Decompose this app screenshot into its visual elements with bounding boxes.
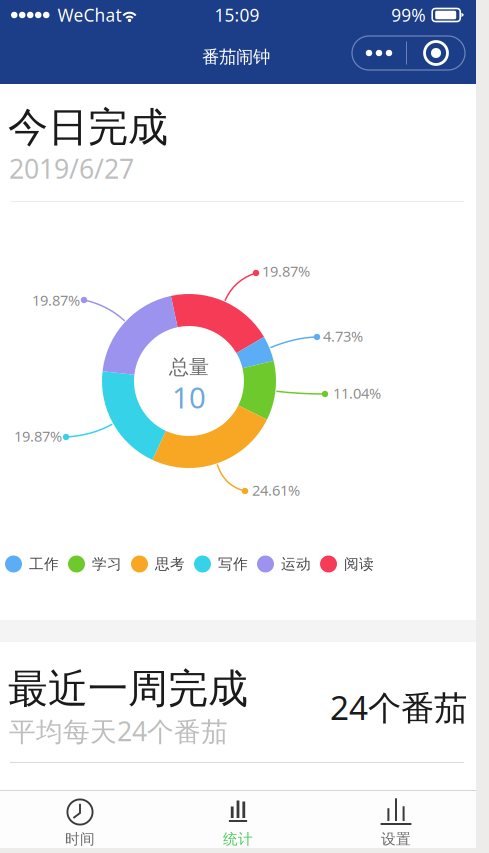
staticText: 工作 [29,555,59,573]
staticText: 24.61% [252,480,300,500]
staticText: 19.87% [14,426,62,446]
staticText: 时间 [65,830,95,848]
staticText: 阅读 [344,555,374,573]
button[interactable]: 设置 [317,791,475,848]
staticText: 15:09 [214,3,259,26]
staticText: 学习 [92,555,122,573]
button[interactable]: More options [352,36,465,70]
staticText: 统计 [223,830,253,848]
staticText: 思考 [155,555,185,573]
staticText: 99% [391,3,425,26]
staticText: 番茄闹钟 [202,46,270,68]
staticText: 平均每天24个番茄 [9,713,228,749]
staticText: 19.87% [262,261,310,281]
staticText: 19.87% [32,290,80,310]
staticText: 最近一周完成 [8,664,248,713]
staticText: 4.73% [323,326,363,346]
button[interactable]: 时间 [1,791,159,848]
staticText: WeChat [57,3,121,26]
staticText: 运动 [281,555,311,573]
staticText: 2019/6/27 [9,151,134,186]
button[interactable]: 统计 [159,791,317,848]
staticText: 设置 [381,830,411,848]
staticText: 24个番茄 [330,685,467,729]
staticText: 今日完成 [8,103,168,152]
staticText: 11.04% [333,383,381,403]
staticText: 写作 [218,555,248,573]
staticText: 10 [172,377,206,416]
staticText: 总量 [169,355,209,379]
